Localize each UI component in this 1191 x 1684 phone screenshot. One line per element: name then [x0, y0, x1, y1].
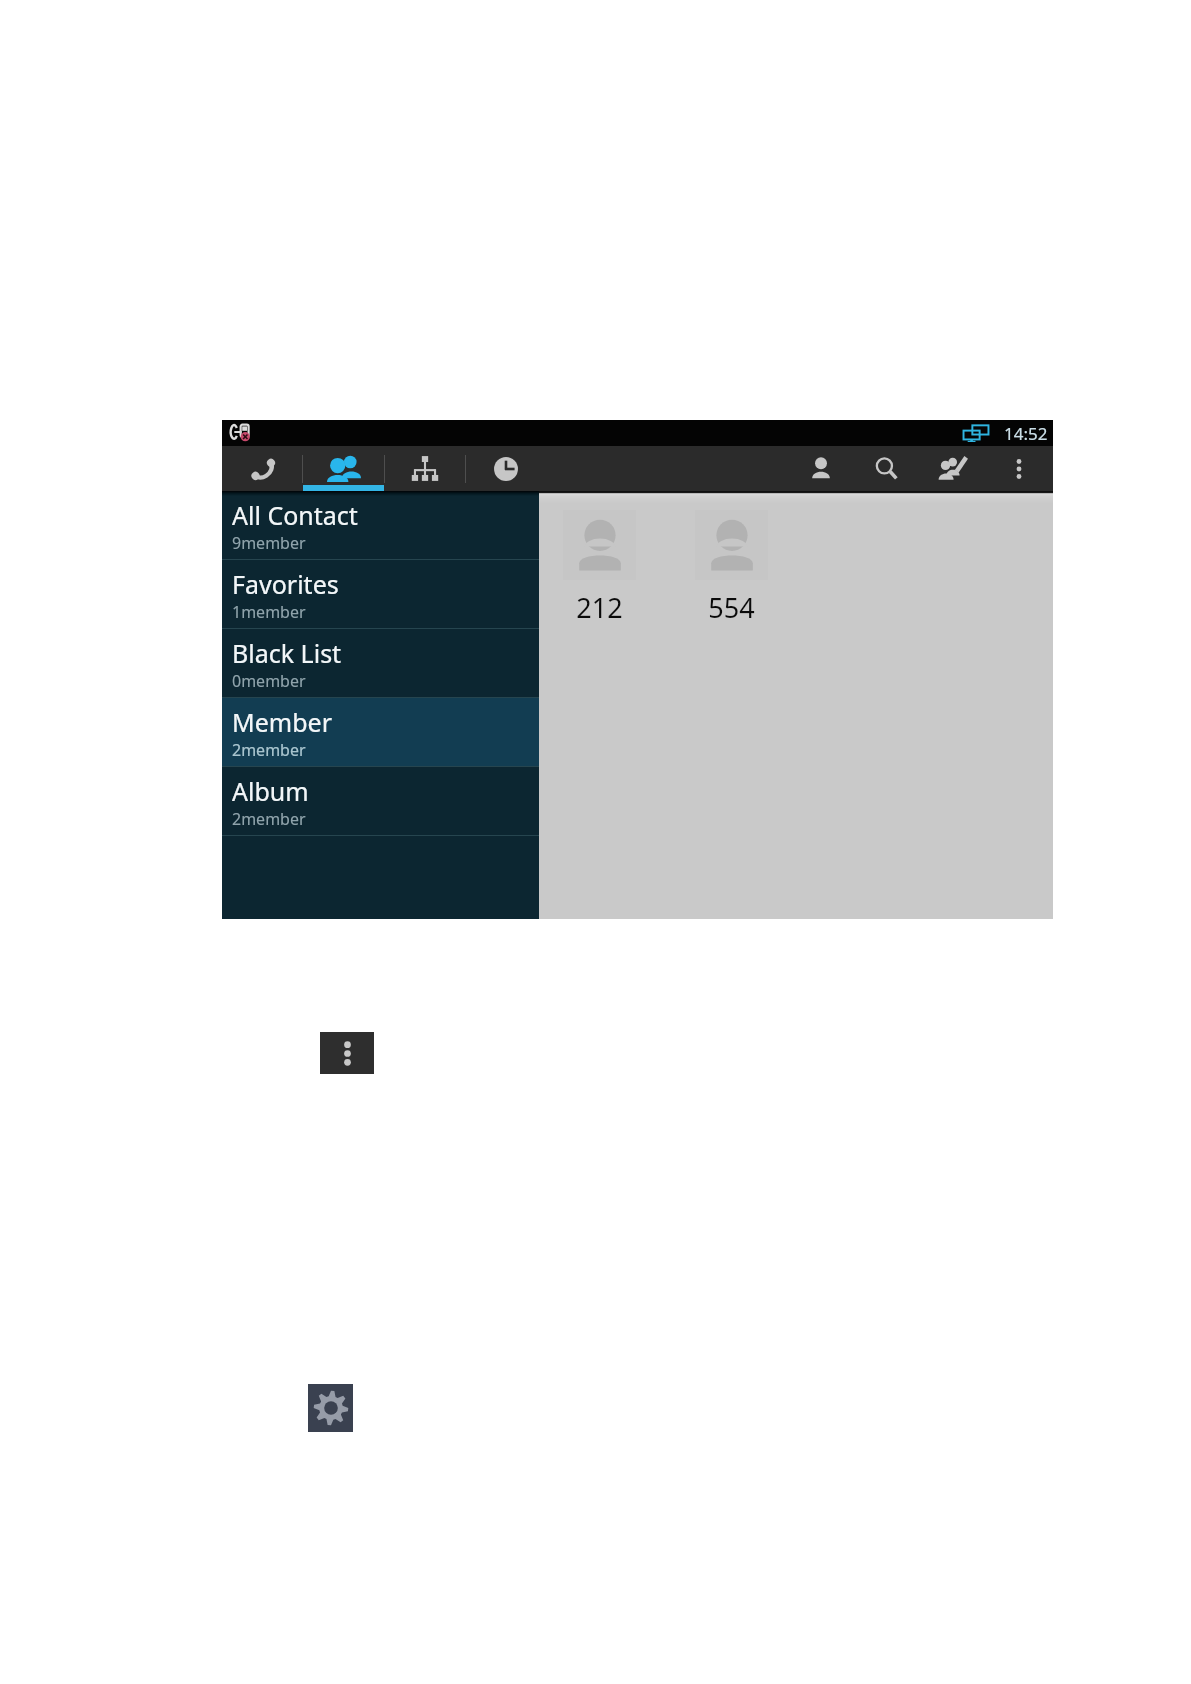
staticText: Favorites	[232, 567, 339, 601]
staticText: 2member	[232, 808, 306, 830]
button[interactable]: 212	[563, 510, 636, 626]
button[interactable]: Add contact	[788, 446, 854, 491]
staticText: Album	[232, 774, 309, 808]
staticText: Black List	[232, 636, 342, 670]
button[interactable]: Contacts	[303, 446, 384, 491]
button[interactable]: Settings	[308, 1384, 353, 1432]
button[interactable]: Edit group	[920, 446, 986, 491]
button[interactable]: Search	[854, 446, 920, 491]
staticText: All Contact	[232, 498, 358, 532]
staticText: 1member	[232, 601, 306, 623]
button[interactable]: More options	[986, 446, 1052, 491]
staticText: 0member	[232, 670, 306, 692]
button[interactable]: Call history	[466, 446, 546, 491]
staticText: 9member	[232, 532, 306, 554]
button[interactable]: Directory	[385, 446, 465, 491]
staticText: 14:52	[1004, 422, 1048, 445]
button[interactable]: Dial pad	[222, 446, 302, 491]
staticText: Member	[232, 705, 332, 739]
staticText: 212	[576, 589, 623, 626]
button[interactable]: Favorites	[222, 560, 539, 629]
staticText: 554	[708, 589, 755, 626]
button[interactable]: Member	[222, 698, 539, 767]
button[interactable]: Black List	[222, 629, 539, 698]
button[interactable]: More options	[320, 1032, 374, 1074]
button[interactable]: Album	[222, 767, 539, 836]
button[interactable]: All Contact	[222, 491, 539, 560]
button[interactable]: 554	[695, 510, 768, 626]
staticText: 2member	[232, 739, 306, 761]
